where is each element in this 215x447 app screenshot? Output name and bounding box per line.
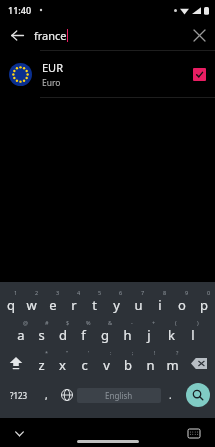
- staticText: 1: [14, 289, 18, 296]
- button[interactable]: @: [10, 318, 31, 348]
- button[interactable]: 9: [171, 288, 193, 318]
- staticText: .: [169, 388, 172, 402]
- staticText: $: [66, 319, 70, 326]
- staticText: b: [124, 356, 132, 374]
- staticText: h: [123, 326, 132, 344]
- staticText: 2: [35, 289, 39, 296]
- staticText: (: [175, 319, 177, 326]
- button[interactable]: Back: [0, 20, 34, 50]
- staticText: j: [147, 326, 151, 344]
- staticText: ?: [176, 349, 179, 356]
- staticText: Euro: [42, 77, 61, 89]
- staticText: ': [88, 349, 90, 356]
- staticText: s: [38, 326, 45, 344]
- staticText: -: [131, 319, 133, 326]
- staticText: ;: [132, 349, 134, 356]
- button[interactable]: 8: [149, 288, 171, 318]
- staticText: t: [92, 296, 97, 314]
- staticText: *: [45, 349, 49, 356]
- button[interactable]: ;: [117, 348, 139, 378]
- button[interactable]: English: [77, 388, 161, 403]
- button[interactable]: Shift: [0, 348, 31, 378]
- button[interactable]: Change language: [56, 378, 77, 412]
- staticText: v: [103, 356, 110, 374]
- staticText: ?123: [10, 390, 28, 401]
- button[interactable]: +: [138, 318, 160, 348]
- button[interactable]: 3: [42, 288, 63, 318]
- button[interactable]: -: [116, 318, 138, 348]
- staticText: 8: [163, 289, 167, 296]
- button[interactable]: ?123: [0, 378, 37, 412]
- staticText: f: [81, 326, 86, 344]
- staticText: c: [81, 356, 88, 374]
- button[interactable]: 7: [127, 288, 149, 318]
- staticText: g: [101, 326, 109, 344]
- staticText: 9: [185, 289, 189, 296]
- staticText: o: [178, 296, 186, 314]
- staticText: ): [197, 319, 199, 326]
- button[interactable]: 6: [105, 288, 127, 318]
- staticText: w: [26, 296, 37, 314]
- button[interactable]: :: [95, 348, 117, 378]
- staticText: 5: [98, 289, 102, 296]
- staticText: a: [17, 326, 25, 344]
- button[interactable]: !: [139, 348, 161, 378]
- button[interactable]: *: [31, 348, 52, 378]
- button[interactable]: $: [52, 318, 73, 348]
- button[interactable]: 2: [21, 288, 42, 318]
- staticText: !: [154, 349, 156, 356]
- staticText: 0: [207, 289, 211, 296]
- staticText: z: [38, 356, 45, 374]
- button[interactable]: Hide keyboard: [8, 422, 30, 444]
- button[interactable]: Backspace: [183, 348, 215, 378]
- staticText: 7: [141, 289, 145, 296]
- button[interactable]: ': [73, 348, 95, 378]
- button[interactable]: EUR: [0, 51, 215, 97]
- button[interactable]: ,: [37, 378, 56, 412]
- staticText: 4: [77, 289, 81, 296]
- button[interactable]: &: [94, 318, 116, 348]
- button[interactable]: ?: [161, 348, 183, 378]
- staticText: x: [59, 356, 66, 374]
- staticText: u: [134, 296, 143, 314]
- staticText: q: [7, 296, 15, 314]
- staticText: m: [166, 356, 179, 374]
- staticText: &: [108, 319, 113, 326]
- button[interactable]: 0: [193, 288, 215, 318]
- button[interactable]: %: [73, 318, 94, 348]
- staticText: ": [66, 349, 69, 356]
- button[interactable]: ": [52, 348, 73, 378]
- button[interactable]: Switch keyboard: [183, 422, 205, 444]
- staticText: d: [59, 326, 67, 344]
- staticText: 6: [119, 289, 123, 296]
- button[interactable]: Search: [180, 378, 215, 412]
- staticText: @: [23, 319, 28, 326]
- staticText: e: [49, 296, 57, 314]
- staticText: 11:40: [8, 4, 32, 16]
- button[interactable]: Clear: [183, 20, 215, 50]
- button[interactable]: Selected: [193, 68, 206, 81]
- staticText: EUR: [42, 60, 63, 75]
- staticText: 3: [56, 289, 60, 296]
- button[interactable]: (: [160, 318, 182, 348]
- staticText: p: [200, 296, 208, 314]
- button[interactable]: .: [161, 378, 180, 412]
- staticText: :: [110, 349, 112, 356]
- staticText: #: [45, 319, 49, 326]
- button[interactable]: 4: [63, 288, 84, 318]
- button[interactable]: 1: [0, 288, 21, 318]
- staticText: france: [34, 28, 67, 43]
- staticText: r: [71, 296, 77, 314]
- button[interactable]: #: [31, 318, 52, 348]
- staticText: k: [168, 326, 175, 344]
- staticText: English: [105, 390, 133, 401]
- staticText: n: [146, 356, 155, 374]
- staticText: y: [113, 296, 120, 314]
- button[interactable]: ): [182, 318, 204, 348]
- staticText: %: [86, 319, 91, 326]
- staticText: ,: [45, 388, 48, 402]
- staticText: +: [152, 319, 156, 326]
- staticText: i: [158, 296, 162, 314]
- button[interactable]: 5: [84, 288, 105, 318]
- staticText: l: [191, 326, 195, 344]
